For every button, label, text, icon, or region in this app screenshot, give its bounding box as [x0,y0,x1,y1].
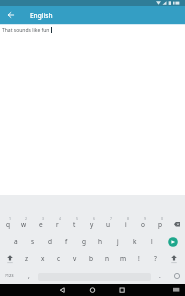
staticText: s [31,237,35,246]
button[interactable]: . [151,267,169,284]
staticText: d [48,237,52,246]
button[interactable]: z [19,250,35,267]
staticText: . [159,271,161,280]
button[interactable]: v [67,250,83,267]
button[interactable]: f [58,233,75,250]
staticText: ? [154,254,157,263]
staticText: 5 [76,216,79,221]
staticText: u [106,220,111,229]
button[interactable] [168,216,185,233]
staticText: k [133,237,137,246]
button[interactable] [0,6,22,24]
staticText: h [98,237,103,246]
button[interactable]: u [100,216,117,233]
button[interactable] [163,250,185,267]
button[interactable] [0,250,19,267]
button[interactable]: ! [131,250,147,267]
staticText: 8 [127,216,130,221]
button[interactable]: o [134,216,151,233]
button[interactable]: y [83,216,100,233]
staticText: x [41,254,45,263]
button[interactable]: ?123 [0,267,19,284]
staticText: j [117,237,119,246]
button[interactable]: , [19,267,38,284]
button[interactable]: h [92,233,109,250]
staticText: y [90,220,94,229]
staticText: 4 [59,216,62,221]
button[interactable] [169,267,185,284]
button[interactable]: p [151,216,168,233]
button[interactable]: ? [147,250,163,267]
button[interactable]: c [51,250,67,267]
staticText: c [57,254,61,263]
staticText: z [25,254,29,263]
staticText: English [30,11,53,20]
button[interactable]: d [41,233,58,250]
button[interactable] [38,267,151,284]
button[interactable]: k [126,233,143,250]
staticText: g [82,237,86,246]
staticText: n [105,254,110,263]
button[interactable]: j [109,233,126,250]
button[interactable]: t [66,216,83,233]
button[interactable]: i [117,216,134,233]
button[interactable]: r [49,216,66,233]
staticText: That sounds like fun [2,27,50,34]
staticText: f [65,237,68,246]
staticText: r [56,220,59,229]
button[interactable]: English [0,6,185,24]
staticText: t [73,220,76,229]
staticText: l [151,237,153,246]
button[interactable] [160,233,185,250]
staticText: p [158,220,162,229]
button[interactable]: a [7,233,24,250]
button[interactable] [169,284,185,296]
button[interactable]: l [143,233,160,250]
staticText: q [6,220,10,229]
staticText: e [39,220,43,229]
button[interactable] [98,284,122,296]
button[interactable] [74,284,98,296]
staticText: ! [138,254,140,263]
staticText: m [120,254,127,263]
staticText: i [125,220,127,229]
staticText: 9 [144,216,147,221]
staticText: w [21,220,27,229]
button[interactable]: b [83,250,99,267]
staticText: 2 [25,216,28,221]
button[interactable]: m [115,250,131,267]
button[interactable]: e [32,216,49,233]
staticText: a [14,237,18,246]
button[interactable]: x [35,250,51,267]
staticText: 6 [93,216,96,221]
staticText: o [141,220,145,229]
button[interactable] [50,284,74,296]
button[interactable]: q [0,216,16,233]
button[interactable]: g [75,233,92,250]
button[interactable]: n [99,250,115,267]
staticText: b [89,254,93,263]
staticText: ?123 [5,273,14,278]
staticText: , [28,271,30,280]
staticText: 7 [110,216,113,221]
button[interactable]: w [16,216,32,233]
staticText: 1 [9,216,12,221]
button[interactable]: s [24,233,41,250]
staticText: v [73,254,77,263]
staticText: 0 [161,216,164,221]
staticText: 3 [42,216,45,221]
